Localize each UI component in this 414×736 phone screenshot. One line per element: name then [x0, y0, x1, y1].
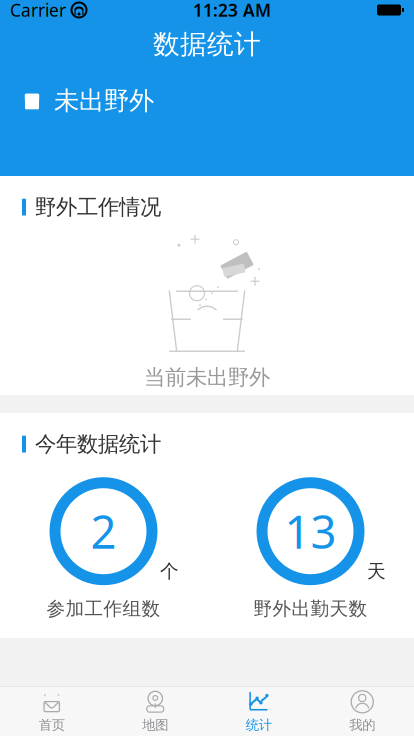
- button[interactable]: 统计: [207, 687, 310, 736]
- staticText: 未出野外: [54, 85, 154, 116]
- staticText: 统计: [246, 717, 272, 733]
- staticText: 数据统计: [153, 28, 261, 61]
- button[interactable]: 地图: [103, 687, 207, 736]
- staticText: 参加工作组数: [46, 597, 160, 620]
- staticText: 个: [160, 560, 179, 583]
- staticText: 11:23 AM: [193, 0, 271, 21]
- staticText: 13: [284, 501, 336, 561]
- staticText: 当前未出野外: [144, 364, 270, 390]
- staticText: 野外出勤天数: [253, 597, 367, 620]
- staticText: 天: [367, 560, 386, 583]
- button[interactable]: 首页: [0, 687, 103, 736]
- staticText: 野外工作情况: [35, 194, 161, 220]
- staticText: 今年数据统计: [35, 431, 161, 457]
- staticText: 我的: [349, 717, 375, 733]
- button[interactable]: 未出野外: [0, 79, 414, 123]
- button[interactable]: 我的: [310, 687, 414, 736]
- staticText: 首页: [39, 717, 65, 733]
- staticText: 地图: [142, 717, 168, 733]
- staticText: Carrier: [10, 0, 66, 21]
- staticText: 2: [90, 501, 116, 561]
